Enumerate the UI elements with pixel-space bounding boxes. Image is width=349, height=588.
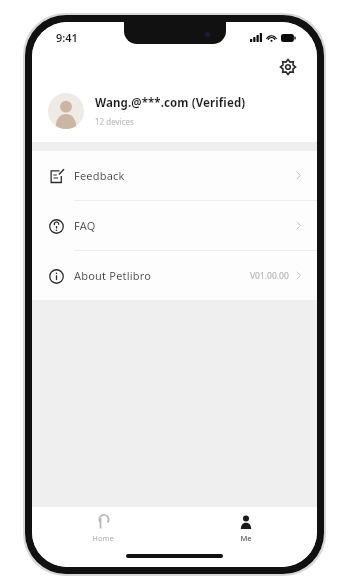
staticText: V01.00.00 [250,270,289,282]
staticText: Feedback [74,168,125,183]
button[interactable]: FAQ [32,201,317,250]
staticText: About Petlibro [74,268,152,283]
button[interactable]: About Petlibro [32,251,317,300]
button[interactable]: Home [32,509,174,547]
button[interactable]: Settings [275,54,301,80]
button[interactable]: Wang.@***.com (Verified) [32,82,317,140]
button[interactable]: Feedback [32,151,317,200]
button[interactable]: Me [174,509,317,547]
staticText: Me [240,533,252,543]
staticText: FAQ [74,218,96,233]
staticText: 12 devices [95,116,134,127]
staticText: Wang.@***.com (Verified) [95,95,246,111]
staticText: 9:41 [56,30,78,45]
staticText: Home [92,533,114,543]
